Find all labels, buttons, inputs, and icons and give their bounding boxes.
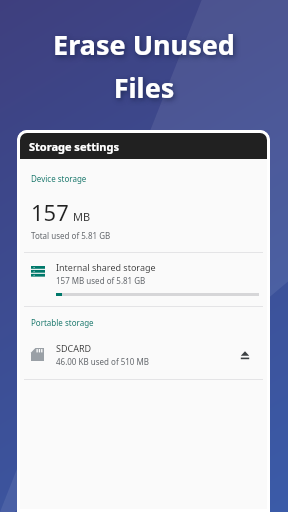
button[interactable]: SDCARD [20,340,267,375]
button[interactable]: Eject SD card [235,345,255,365]
staticText: 46.00 KB used of 510 MB [56,356,149,367]
staticText: MB [73,209,91,224]
button[interactable]: Storage settings [20,133,267,159]
staticText: 157 MB used of 5.81 GB [56,275,146,286]
staticText: Files [0,69,288,106]
staticText: Total used of 5.81 GB [31,230,111,241]
staticText: 157 [31,197,69,227]
staticText: Storage settings [29,139,119,154]
staticText: Portable storage [31,317,94,328]
staticText: Internal shared storage [56,261,156,273]
staticText: Erase Unused [0,26,288,63]
button[interactable]: Internal shared storage [20,253,267,302]
staticText: SDCARD [56,342,92,354]
staticText: Device storage [31,173,87,184]
